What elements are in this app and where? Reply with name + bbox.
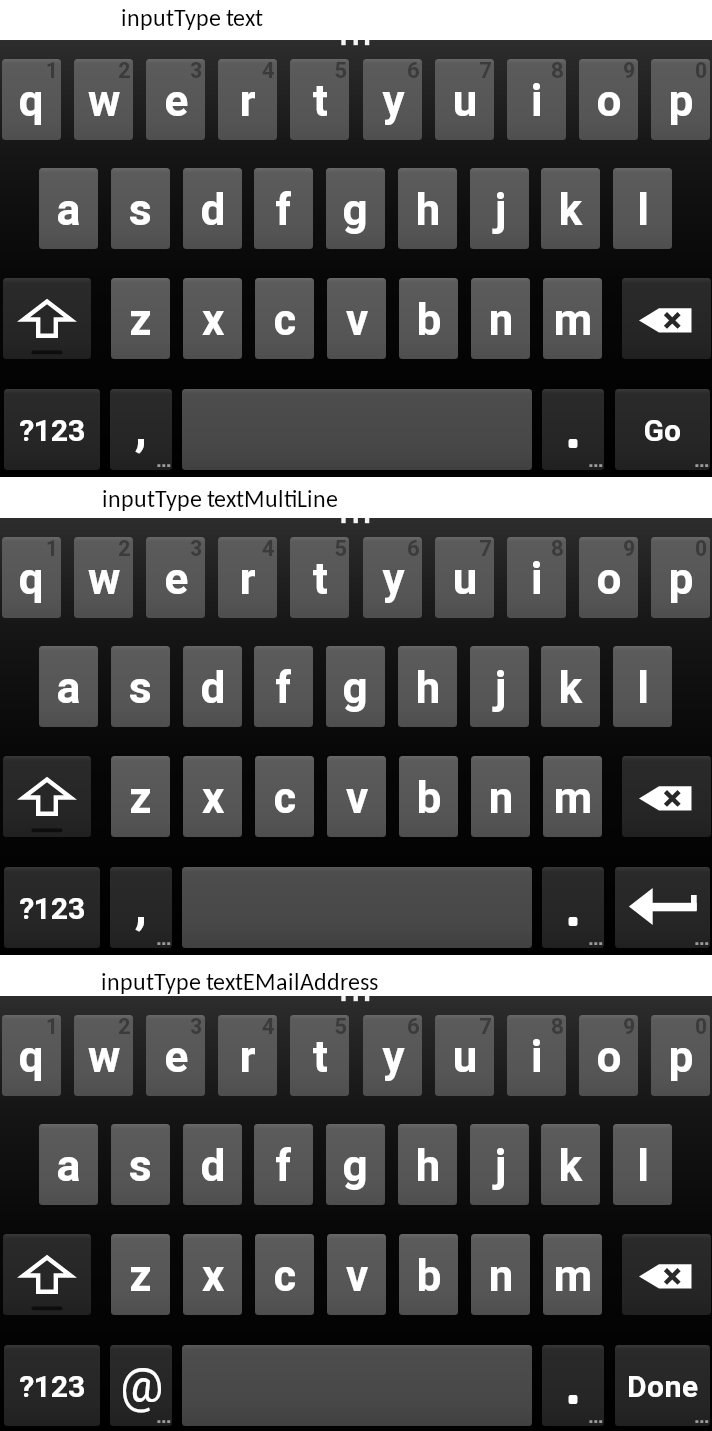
button[interactable] (182, 867, 532, 948)
button[interactable] (2, 537, 61, 618)
button[interactable] (615, 389, 710, 470)
button[interactable] (326, 1124, 385, 1205)
button[interactable] (146, 1015, 205, 1096)
button[interactable] (183, 278, 242, 359)
button[interactable] (4, 389, 100, 470)
button[interactable] (541, 168, 600, 249)
button[interactable] (39, 646, 98, 727)
button[interactable] (579, 1015, 638, 1096)
button[interactable] (363, 1015, 422, 1096)
button[interactable] (255, 756, 314, 837)
button[interactable] (110, 389, 172, 470)
button[interactable] (507, 537, 566, 618)
button[interactable] (111, 1234, 170, 1315)
button[interactable] (74, 59, 133, 140)
button[interactable] (651, 1015, 710, 1096)
button[interactable] (543, 278, 602, 359)
button[interactable] (110, 1345, 172, 1426)
button[interactable] (74, 1015, 133, 1096)
button[interactable] (471, 278, 530, 359)
button[interactable] (2, 59, 61, 140)
button[interactable] (622, 1234, 711, 1315)
button[interactable] (399, 1234, 458, 1315)
button[interactable] (398, 1124, 457, 1205)
button[interactable] (218, 537, 277, 618)
button[interactable] (541, 646, 600, 727)
button[interactable] (218, 1015, 277, 1096)
button[interactable] (542, 389, 604, 470)
button[interactable] (542, 867, 604, 948)
button[interactable] (182, 389, 532, 470)
button[interactable] (326, 168, 385, 249)
button[interactable] (39, 168, 98, 249)
button[interactable] (39, 1124, 98, 1205)
button[interactable] (183, 1124, 242, 1205)
button[interactable] (111, 1124, 170, 1205)
button[interactable] (2, 1015, 61, 1096)
button[interactable] (254, 646, 313, 727)
button[interactable] (542, 1345, 604, 1426)
button[interactable] (613, 646, 672, 727)
button[interactable] (363, 537, 422, 618)
button[interactable] (327, 1234, 386, 1315)
button[interactable] (146, 59, 205, 140)
button[interactable] (470, 168, 529, 249)
button[interactable] (290, 537, 349, 618)
button[interactable] (398, 646, 457, 727)
button[interactable] (615, 1345, 710, 1426)
button[interactable] (471, 1234, 530, 1315)
button[interactable] (507, 59, 566, 140)
button[interactable] (111, 168, 170, 249)
button[interactable] (255, 278, 314, 359)
button[interactable] (3, 1234, 91, 1315)
button[interactable] (615, 867, 710, 948)
button[interactable] (183, 168, 242, 249)
button[interactable] (4, 867, 100, 948)
button[interactable] (3, 278, 91, 359)
button[interactable] (74, 537, 133, 618)
button[interactable] (182, 1345, 532, 1426)
button[interactable] (183, 646, 242, 727)
button[interactable] (399, 756, 458, 837)
button[interactable] (111, 646, 170, 727)
button[interactable] (218, 59, 277, 140)
button[interactable] (622, 756, 711, 837)
button[interactable] (543, 1234, 602, 1315)
button[interactable] (327, 756, 386, 837)
button[interactable] (651, 59, 710, 140)
button[interactable] (290, 1015, 349, 1096)
button[interactable] (541, 1124, 600, 1205)
button[interactable] (435, 1015, 494, 1096)
button[interactable] (111, 756, 170, 837)
button[interactable] (613, 168, 672, 249)
button[interactable] (398, 168, 457, 249)
button[interactable] (363, 59, 422, 140)
button[interactable] (255, 1234, 314, 1315)
button[interactable] (290, 59, 349, 140)
button[interactable] (146, 537, 205, 618)
button[interactable] (3, 756, 91, 837)
button[interactable] (470, 646, 529, 727)
button[interactable] (471, 756, 530, 837)
button[interactable] (110, 867, 172, 948)
button[interactable] (183, 1234, 242, 1315)
button[interactable] (651, 537, 710, 618)
button[interactable] (613, 1124, 672, 1205)
button[interactable] (579, 59, 638, 140)
button[interactable] (579, 537, 638, 618)
button[interactable] (507, 1015, 566, 1096)
button[interactable] (254, 168, 313, 249)
button[interactable] (470, 1124, 529, 1205)
button[interactable] (435, 537, 494, 618)
button[interactable] (254, 1124, 313, 1205)
button[interactable] (327, 278, 386, 359)
button[interactable] (435, 59, 494, 140)
button[interactable] (622, 278, 711, 359)
button[interactable] (399, 278, 458, 359)
button[interactable] (183, 756, 242, 837)
button[interactable] (111, 278, 170, 359)
button[interactable] (326, 646, 385, 727)
button[interactable] (4, 1345, 100, 1426)
button[interactable] (543, 756, 602, 837)
